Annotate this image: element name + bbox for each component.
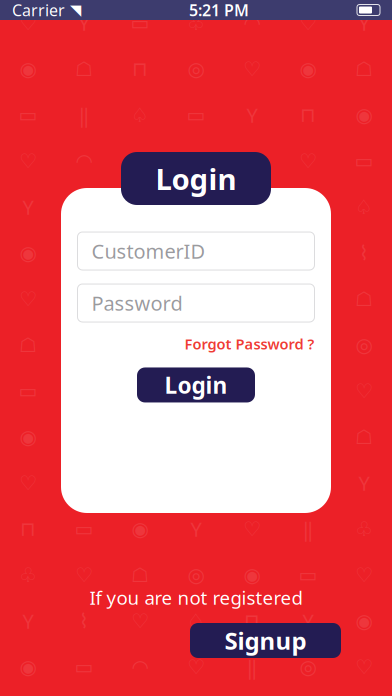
staticText: ‖ (246, 654, 257, 680)
button[interactable]: Forgot Password ? (184, 334, 314, 353)
staticText: Y (22, 608, 33, 634)
staticText: ▭ (74, 656, 93, 678)
staticText: ◠ (243, 12, 260, 34)
staticText: ♧ (19, 564, 37, 586)
staticText: ⌇ (135, 380, 145, 402)
button[interactable]: Signup (190, 623, 341, 658)
staticText: ◎ (187, 58, 204, 80)
staticText: ‖ (190, 378, 201, 404)
staticText: ☖ (187, 196, 205, 218)
button[interactable]: Password (77, 284, 314, 322)
staticText: ◥ (70, 2, 81, 18)
staticText: ◉ (299, 242, 316, 264)
staticText: ◎ (355, 334, 372, 356)
staticText: ▭ (130, 12, 149, 34)
staticText: ◉ (355, 104, 372, 126)
staticText: Y (358, 470, 369, 496)
staticText: ☖ (75, 58, 93, 80)
staticText: Y (302, 608, 313, 634)
staticText: Y (358, 10, 369, 36)
staticText: ♧ (243, 334, 261, 356)
staticText: ♧ (131, 242, 149, 264)
button[interactable]: Login (121, 152, 271, 205)
staticText: ⊓ (20, 518, 36, 540)
staticText: Y (78, 10, 89, 36)
staticText: ◉ (355, 610, 372, 632)
staticText: ⌇ (359, 242, 369, 264)
staticText: Signup (224, 625, 306, 656)
staticText: ☖ (131, 564, 149, 586)
staticText: ◎ (243, 196, 260, 218)
staticText: ◉ (299, 58, 316, 80)
staticText: ♡ (299, 12, 317, 34)
staticText: ♡ (299, 288, 317, 310)
staticText: ◠ (299, 334, 316, 356)
staticText: ♤ (355, 196, 373, 218)
staticText: ☖ (355, 58, 373, 80)
staticText: ◠ (131, 656, 148, 678)
staticText: ◉ (187, 334, 204, 356)
staticText: ♡ (187, 242, 205, 264)
button[interactable]: Login (137, 367, 255, 402)
staticText: ☖ (355, 426, 373, 448)
staticText: ◉ (19, 242, 36, 264)
staticText: ◎ (131, 288, 148, 310)
staticText: ◉ (243, 564, 260, 586)
staticText: Login (164, 370, 227, 400)
staticText: CustomerID (91, 238, 205, 264)
staticText: Forgot Password ? (184, 334, 314, 353)
staticText: ♧ (187, 12, 205, 34)
staticText: ⊓ (300, 104, 316, 126)
staticText: ♡ (187, 656, 205, 678)
button[interactable]: CustomerID (77, 232, 314, 270)
staticText: ⌇ (79, 610, 89, 632)
staticText: ☖ (355, 288, 373, 310)
staticText: ▭ (354, 150, 373, 172)
staticText: ▭ (74, 518, 93, 540)
staticText: 5:21 PM (189, 0, 249, 21)
staticText: Y (246, 102, 257, 128)
staticText: ◉ (131, 518, 148, 540)
staticText: ◉ (19, 58, 36, 80)
staticText: ♤ (131, 104, 149, 126)
staticText: If you are not registered (89, 585, 302, 610)
staticText: ♤ (187, 610, 205, 632)
staticText: Y (22, 194, 33, 220)
staticText: Password (91, 290, 182, 316)
staticText: ⊓ (244, 610, 260, 632)
staticText: ◠ (75, 150, 92, 172)
staticText: ▭ (186, 104, 205, 126)
staticText: ◎ (187, 564, 204, 586)
staticText: ☖ (19, 334, 37, 356)
staticText: ♡ (131, 196, 149, 218)
staticText: ▭ (298, 564, 317, 586)
staticText: ♡ (19, 12, 37, 34)
